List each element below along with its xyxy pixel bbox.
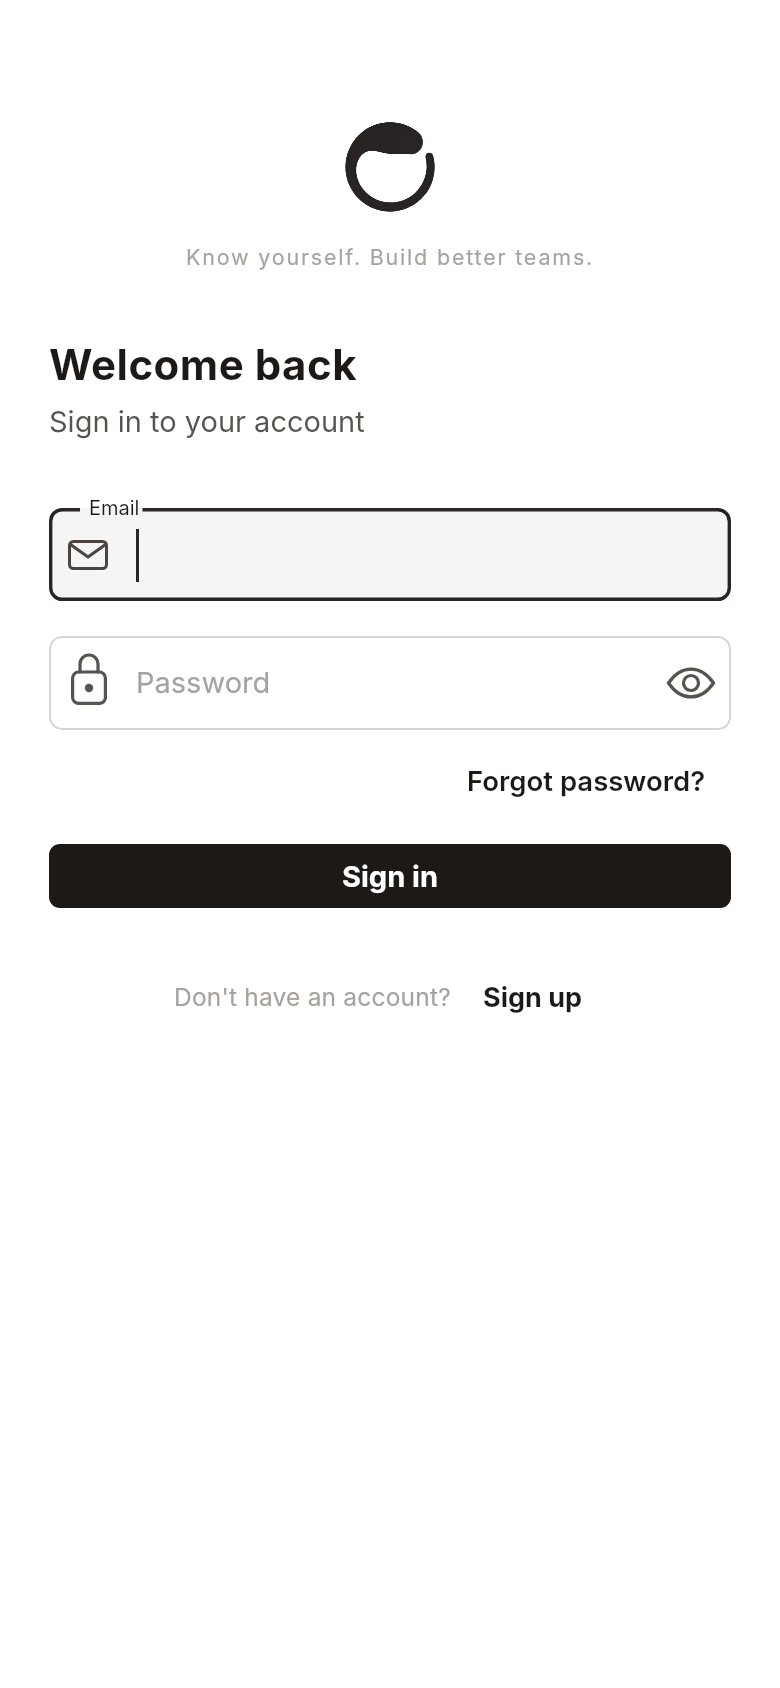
staticText: Sign up (483, 981, 583, 1014)
staticText: Don't have an account? (174, 982, 451, 1012)
button[interactable]: Forgot password? (467, 764, 706, 797)
button[interactable] (49, 508, 731, 601)
button[interactable]: Sign up (483, 981, 583, 1014)
staticText: Sign in to your account (49, 404, 365, 439)
staticText: Forgot password? (467, 764, 706, 797)
button[interactable]: Sign in (49, 844, 731, 908)
staticText: Email (89, 496, 140, 520)
staticText: Sign in (342, 859, 439, 894)
staticText: Welcome back (49, 339, 357, 390)
button[interactable] (49, 636, 731, 730)
button[interactable] (665, 662, 717, 704)
staticText: Password (136, 665, 271, 700)
staticText: Know yourself. Build better teams. (186, 244, 595, 270)
